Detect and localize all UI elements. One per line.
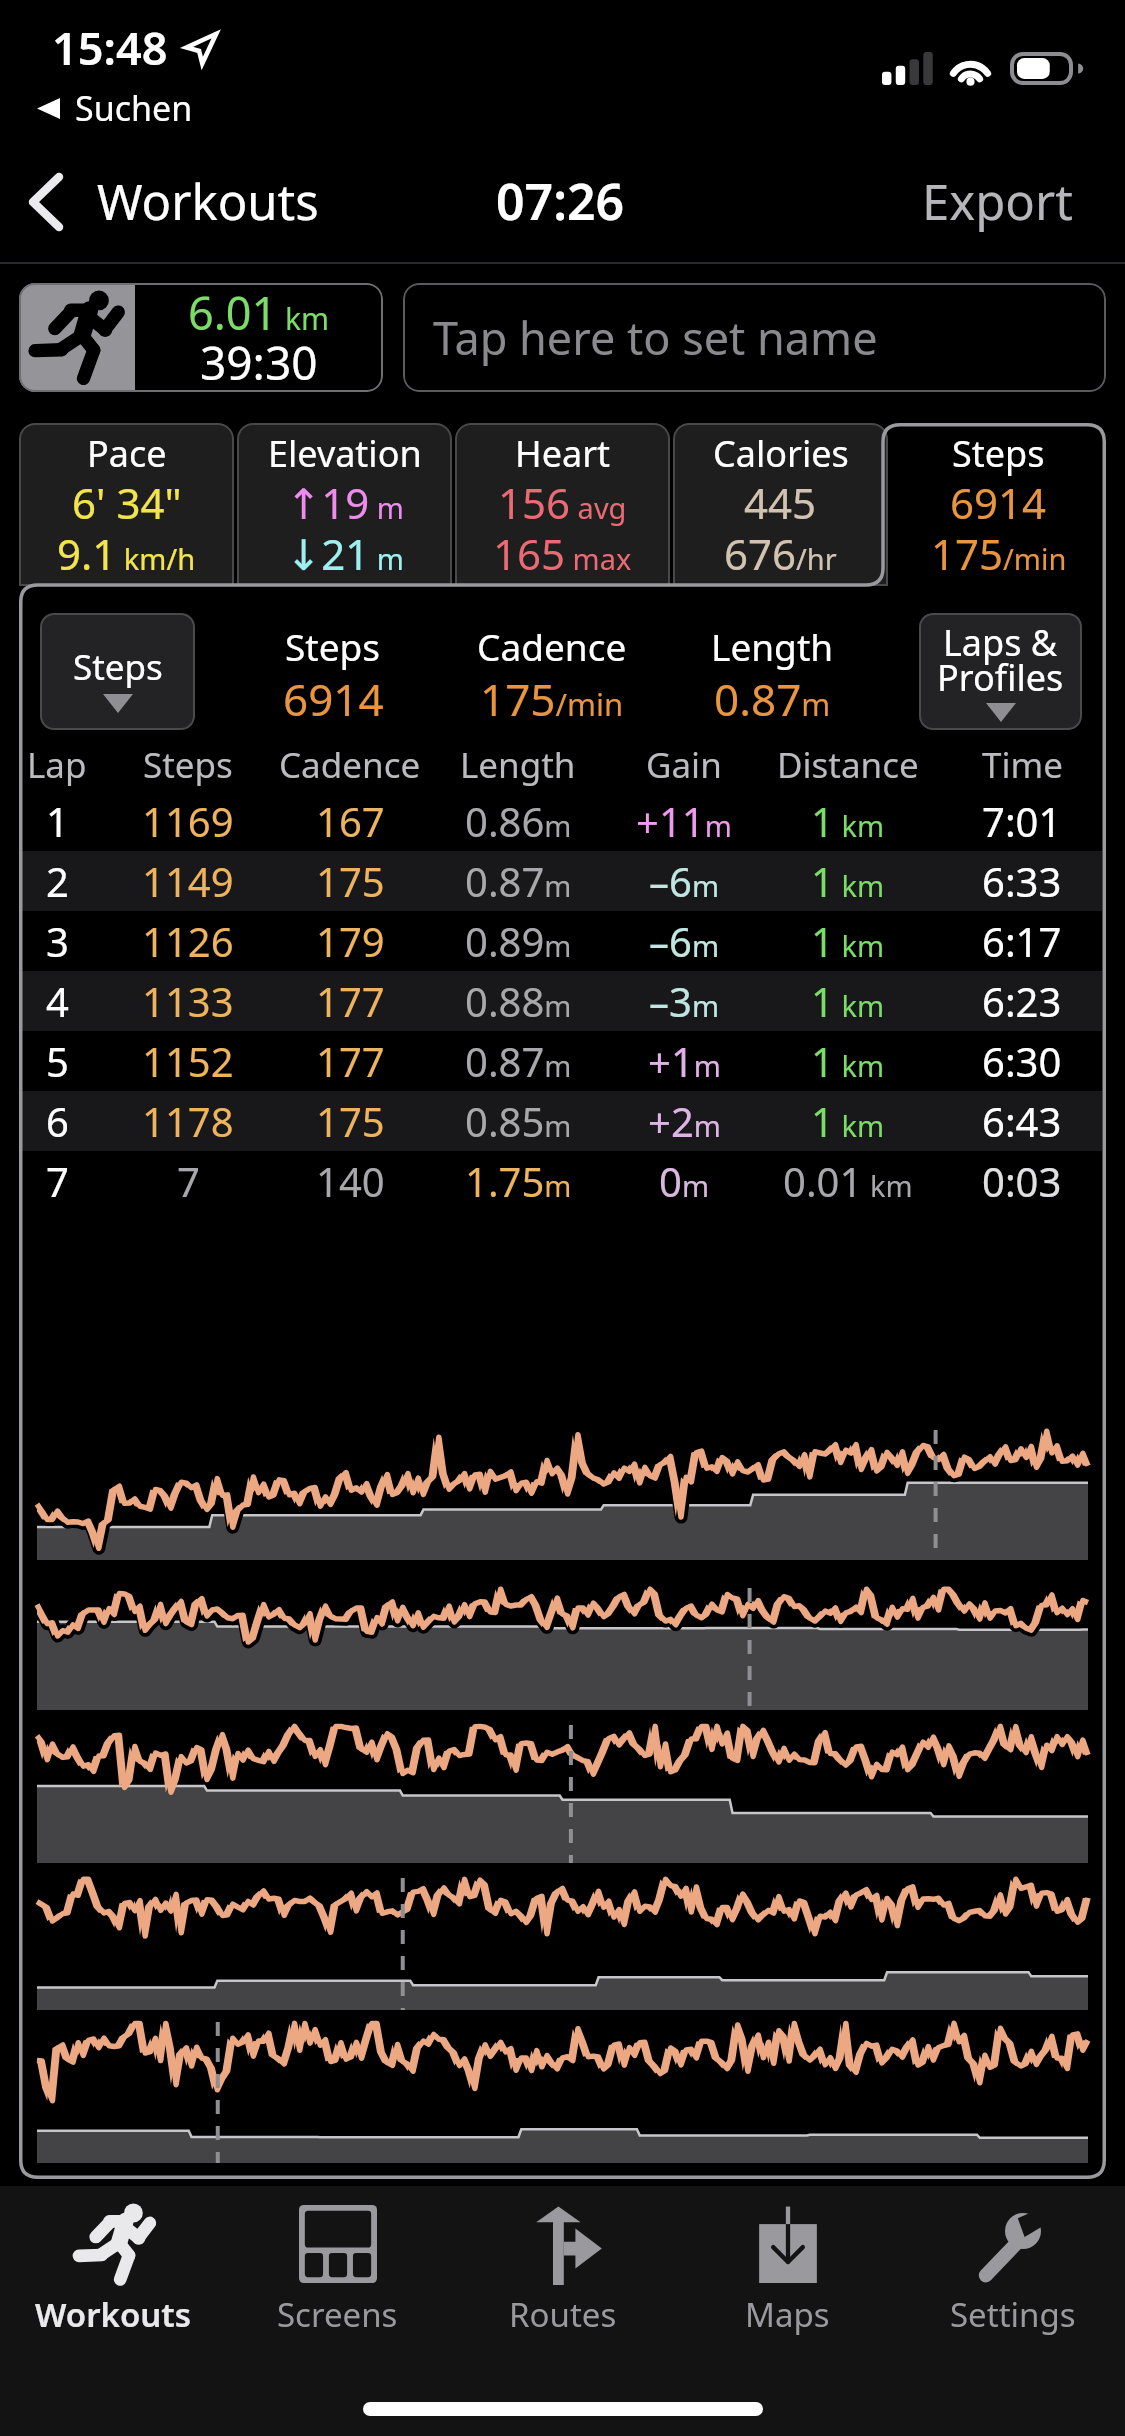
- staticText: Gain: [646, 741, 722, 789]
- staticText: Cadence: [477, 621, 627, 671]
- staticText: –6m: [649, 854, 719, 908]
- staticText: 0:03: [982, 1154, 1062, 1208]
- button[interactable]: 2: [19, 851, 1102, 911]
- button[interactable]: Elevation: [237, 423, 452, 586]
- staticText: 6:33: [982, 854, 1062, 908]
- staticText: 1133: [142, 974, 234, 1028]
- staticText: 0.87m: [714, 669, 831, 729]
- button[interactable]: 6.01 km: [19, 283, 383, 392]
- button[interactable]: Tap here to set name: [403, 283, 1106, 392]
- staticText: 3: [46, 914, 69, 968]
- button[interactable]: Settings: [900, 2186, 1125, 2346]
- staticText: 1: [46, 794, 69, 848]
- staticText: 1 km: [811, 1034, 885, 1088]
- staticText: –6m: [649, 914, 719, 968]
- button[interactable]: Laps &: [919, 613, 1082, 730]
- button[interactable]: Maps: [675, 2186, 900, 2346]
- staticText: 0.87m: [465, 1034, 572, 1088]
- staticText: 7:01: [982, 794, 1062, 848]
- staticText: 175: [316, 854, 385, 908]
- staticText: 167: [316, 794, 385, 848]
- staticText: Lap: [27, 741, 87, 789]
- button[interactable]: Workouts: [0, 158, 337, 245]
- staticText: 177: [316, 974, 385, 1028]
- staticText: 15:48: [52, 17, 168, 78]
- staticText: 1.75m: [465, 1154, 572, 1208]
- staticText: 6914: [283, 669, 384, 729]
- staticText: Export: [922, 168, 1073, 235]
- staticText: Routes: [509, 2292, 617, 2337]
- staticText: Calories: [713, 429, 849, 478]
- staticText: ↑19 m: [286, 474, 404, 531]
- button[interactable]: 4: [19, 971, 1102, 1031]
- staticText: Time: [982, 741, 1063, 789]
- staticText: 0.86m: [465, 794, 572, 848]
- staticText: ↓21 m: [286, 525, 404, 582]
- button[interactable]: Routes: [450, 2186, 675, 2346]
- staticText: 1 km: [811, 974, 885, 1028]
- staticText: 676/hr: [724, 525, 837, 582]
- staticText: 1126: [142, 914, 234, 968]
- staticText: 165 max: [493, 525, 632, 582]
- staticText: Pace: [87, 429, 167, 478]
- staticText: 9.1 km/h: [57, 525, 196, 582]
- staticText: 07:26: [496, 167, 625, 235]
- button[interactable]: Steps: [891, 423, 1106, 586]
- staticText: Length: [460, 741, 576, 789]
- staticText: 1 km: [811, 854, 885, 908]
- button[interactable]: 1: [19, 791, 1102, 851]
- staticText: Settings: [950, 2292, 1076, 2337]
- other: Routes: [523, 2205, 603, 2285]
- button[interactable]: Export: [892, 156, 1125, 247]
- button[interactable]: 5: [19, 1031, 1102, 1091]
- button[interactable]: Calories: [673, 423, 888, 586]
- staticText: 39:30: [200, 331, 318, 392]
- staticText: Tap here to set name: [433, 307, 878, 368]
- staticText: 0.88m: [465, 974, 572, 1028]
- staticText: 0.89m: [465, 914, 572, 968]
- staticText: Steps: [143, 741, 233, 789]
- staticText: 1178: [142, 1094, 234, 1148]
- other: Screens: [299, 2205, 377, 2283]
- staticText: 1149: [142, 854, 234, 908]
- staticText: Steps: [73, 643, 163, 691]
- button[interactable]: 6: [19, 1091, 1102, 1151]
- staticText: 175/min: [931, 525, 1067, 582]
- staticText: Elevation: [268, 429, 422, 478]
- staticText: Workouts: [97, 168, 319, 235]
- staticText: 0m: [659, 1154, 709, 1208]
- staticText: 6:23: [982, 974, 1062, 1028]
- staticText: Profiles: [937, 653, 1064, 702]
- staticText: 0.87m: [465, 854, 572, 908]
- staticText: 1 km: [811, 914, 885, 968]
- button[interactable]: 3: [19, 911, 1102, 971]
- button[interactable]: Workouts: [0, 2186, 225, 2346]
- staticText: 1 km: [811, 794, 885, 848]
- button[interactable]: Heart: [455, 423, 670, 586]
- staticText: 2: [46, 854, 69, 908]
- staticText: Steps: [952, 429, 1045, 478]
- staticText: 0.85m: [465, 1094, 572, 1148]
- staticText: 175/min: [480, 669, 624, 729]
- staticText: 177: [316, 1034, 385, 1088]
- staticText: Workouts: [35, 2292, 191, 2337]
- button[interactable]: Steps: [40, 613, 195, 730]
- staticText: +1m: [648, 1034, 721, 1088]
- staticText: Suchen: [75, 85, 193, 131]
- staticText: 179: [316, 914, 385, 968]
- staticText: Laps &: [943, 618, 1058, 667]
- staticText: 7: [177, 1154, 200, 1208]
- button[interactable]: Screens: [225, 2186, 450, 2346]
- staticText: 6.01 km: [188, 283, 330, 343]
- staticText: Screens: [277, 2292, 398, 2337]
- button[interactable]: 7: [19, 1151, 1102, 1211]
- staticText: 4: [46, 974, 69, 1028]
- staticText: 445: [744, 474, 817, 531]
- staticText: +11m: [636, 794, 732, 848]
- button[interactable]: Pace: [19, 423, 234, 586]
- staticText: 0.01 km: [783, 1154, 913, 1208]
- staticText: –3m: [649, 974, 719, 1028]
- staticText: 6' 34": [72, 474, 182, 531]
- other: Maps: [749, 2205, 827, 2283]
- staticText: 6:43: [982, 1094, 1062, 1148]
